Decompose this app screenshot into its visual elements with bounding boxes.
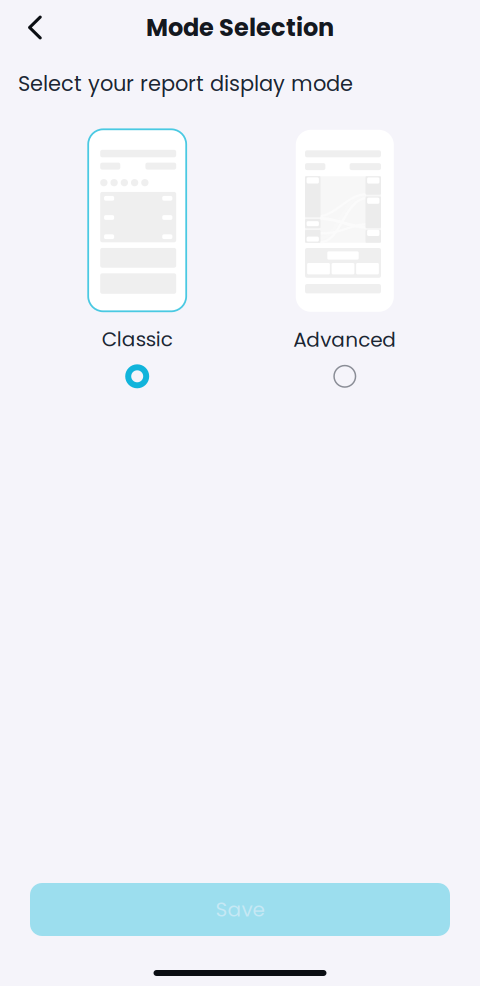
button[interactable]: Classic xyxy=(67,129,207,388)
staticText: Classic xyxy=(102,325,173,353)
staticText: Mode Selection xyxy=(146,11,334,44)
button[interactable]: Save xyxy=(30,883,450,936)
staticText: Advanced xyxy=(293,326,396,354)
staticText: Select your report display mode xyxy=(18,69,353,98)
staticText: Save xyxy=(215,895,264,923)
button[interactable]: Advanced xyxy=(275,130,415,388)
button[interactable]: Back xyxy=(0,5,56,49)
